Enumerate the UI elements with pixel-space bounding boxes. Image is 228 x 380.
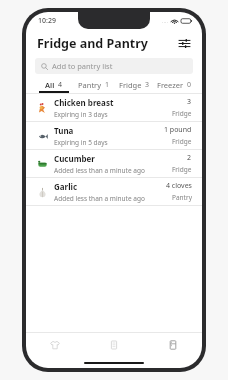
staticText: Cucumber xyxy=(54,153,95,164)
staticText: Fridge xyxy=(119,80,142,90)
button[interactable]: Notes xyxy=(84,333,143,357)
staticText: 4 xyxy=(58,80,63,90)
staticText: All xyxy=(45,80,55,90)
button[interactable]: Fridge xyxy=(114,76,154,93)
staticText: 2 xyxy=(187,153,192,163)
staticText: 1 xyxy=(105,80,110,90)
staticText: Fridge xyxy=(172,137,192,146)
staticText: Added less than a minute ago xyxy=(54,194,145,203)
button[interactable]: Cucumber xyxy=(26,150,202,178)
staticText: Fridge xyxy=(172,109,192,118)
staticText: Added less than a minute ago xyxy=(54,166,145,175)
button[interactable]: Garlic xyxy=(26,178,202,206)
button[interactable]: Freezer xyxy=(154,76,194,93)
staticText: Pantry xyxy=(172,193,192,202)
staticText: Expiring in 5 days xyxy=(54,138,108,147)
staticText: Chicken breast xyxy=(54,97,114,108)
button[interactable]: Chicken breast xyxy=(26,94,202,122)
staticText: Add to pantry list xyxy=(52,61,113,71)
staticText: Garlic xyxy=(54,181,78,192)
staticText: 1 pound xyxy=(164,125,192,135)
staticText: 3 xyxy=(145,80,150,90)
button[interactable]: Fridge xyxy=(143,333,202,357)
button[interactable]: Add to pantry list xyxy=(35,58,193,74)
staticText: 0 xyxy=(187,80,192,90)
button[interactable]: Pantry xyxy=(74,76,114,93)
staticText: Fridge and Pantry xyxy=(37,35,148,52)
staticText: 3 xyxy=(187,97,192,107)
button[interactable]: Filter xyxy=(176,35,192,51)
button[interactable]: All xyxy=(34,76,74,93)
staticText: 4 cloves xyxy=(166,181,192,191)
staticText: Pantry xyxy=(78,80,102,90)
staticText: Fridge xyxy=(172,165,192,174)
staticText: Tuna xyxy=(54,125,74,136)
button[interactable]: Laundry xyxy=(26,333,84,357)
staticText: Freezer xyxy=(157,80,184,90)
staticText: 10:29 xyxy=(38,16,56,26)
button[interactable]: Tuna xyxy=(26,122,202,150)
staticText: Expiring in 3 days xyxy=(54,110,108,119)
